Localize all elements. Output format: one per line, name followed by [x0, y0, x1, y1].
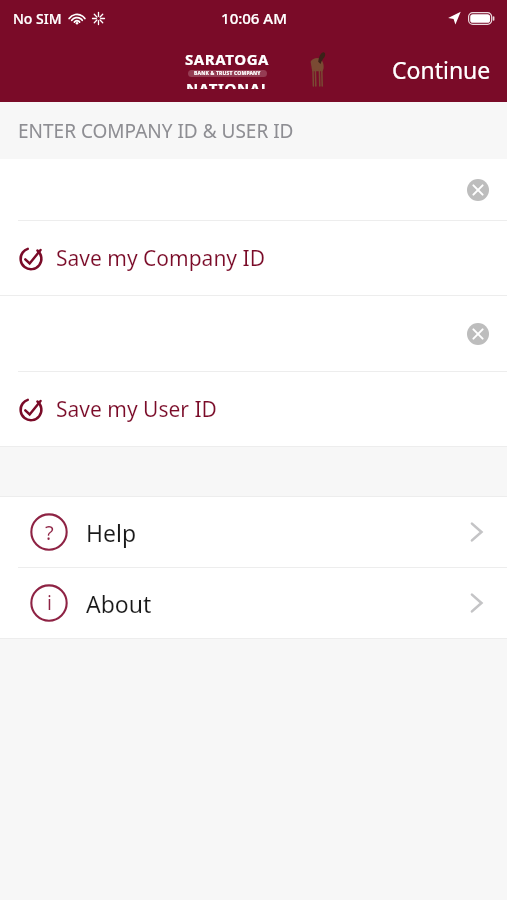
staticText: SARATOGA [185, 49, 270, 69]
staticText: Help [86, 517, 470, 548]
staticText: Continue [392, 54, 491, 85]
staticText: ? [45, 519, 54, 546]
button[interactable]: Clear text [0, 159, 507, 220]
button[interactable]: Save my Company ID [0, 221, 507, 295]
staticText: i [47, 590, 52, 616]
button[interactable]: Clear text [0, 296, 507, 371]
staticText: Save my Company ID [56, 244, 265, 273]
staticText: 10:06 AM [221, 8, 287, 28]
button[interactable]: Save my User ID [0, 372, 507, 446]
staticText: No SIM [13, 9, 62, 28]
staticText: BANK & TRUST COMPANY [194, 70, 261, 77]
button[interactable]: ? [0, 497, 507, 567]
staticText: NATIONAL [186, 78, 270, 89]
button[interactable]: i [0, 568, 507, 638]
staticText: Save my User ID [56, 395, 217, 424]
staticText: About [86, 588, 470, 619]
staticText: ENTER COMPANY ID & USER ID [18, 118, 294, 144]
button[interactable]: Clear text [467, 179, 489, 201]
button[interactable]: Clear text [467, 323, 489, 345]
button[interactable]: Continue [376, 46, 507, 93]
